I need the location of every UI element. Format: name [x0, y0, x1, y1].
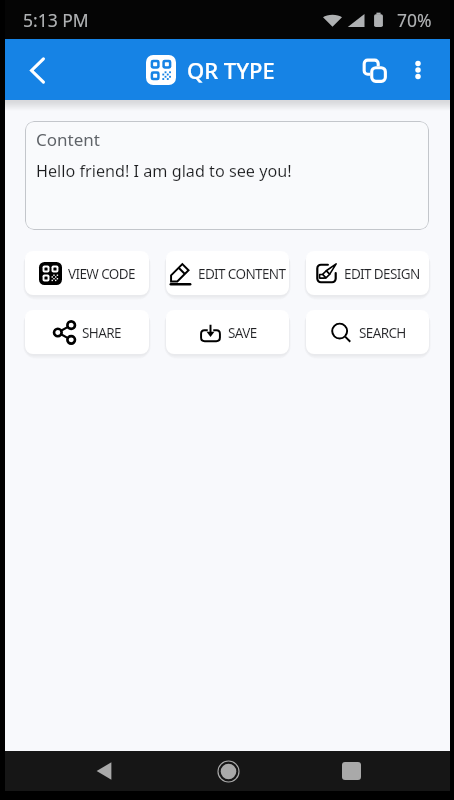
staticText: QR TYPE: [187, 55, 275, 85]
staticText: 70%: [397, 8, 432, 32]
button[interactable]: VIEW CODE: [25, 251, 149, 295]
staticText: SHARE: [82, 324, 121, 342]
button[interactable]: Back: [13, 46, 61, 94]
button[interactable]: Copy: [351, 47, 397, 93]
button[interactable]: SEARCH: [306, 310, 429, 354]
staticText: EDIT CONTENT: [198, 265, 286, 283]
staticText: SEARCH: [359, 324, 406, 342]
button[interactable]: EDIT DESIGN: [306, 251, 429, 295]
staticText: Hello friend! I am glad to see you!: [36, 160, 292, 182]
button[interactable]: More options: [397, 49, 439, 91]
button[interactable]: Back: [80, 751, 128, 791]
staticText: SAVE: [228, 324, 257, 342]
button[interactable]: EDIT CONTENT: [166, 251, 289, 295]
button[interactable]: Recents: [327, 751, 375, 791]
staticText: 5:13 PM: [23, 8, 89, 32]
button[interactable]: SAVE: [166, 310, 289, 354]
button[interactable]: SHARE: [25, 310, 149, 354]
staticText: VIEW CODE: [68, 265, 135, 283]
staticText: Content: [36, 128, 100, 151]
staticText: EDIT DESIGN: [344, 265, 420, 283]
button[interactable]: Home: [204, 751, 252, 791]
